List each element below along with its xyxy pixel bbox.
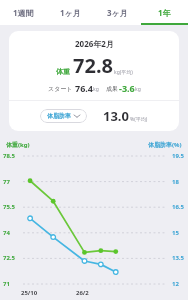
- staticText: 2026年2月: [75, 38, 114, 49]
- button[interactable]: 1年: [141, 0, 188, 25]
- staticText: 78.5: [3, 152, 15, 160]
- staticText: 1年: [158, 7, 171, 18]
- button[interactable]: 体脂肪率を選択: [40, 109, 87, 123]
- staticText: 25/10: [21, 289, 38, 297]
- button[interactable]: 1週間: [0, 0, 47, 25]
- staticText: 1ヶ月: [60, 7, 81, 18]
- staticText: 26/2: [76, 289, 89, 297]
- staticText: 16.5: [172, 203, 184, 211]
- button[interactable]: 1ヶ月: [47, 0, 94, 25]
- staticText: 15: [172, 229, 179, 237]
- staticText: 体脂肪率(%): [148, 141, 182, 149]
- staticText: スタート: [48, 85, 73, 93]
- staticText: 3ヶ月: [107, 7, 128, 18]
- staticText: 1週間: [13, 7, 34, 18]
- staticText: 成果: [106, 85, 118, 93]
- staticText: 75.5: [3, 203, 15, 211]
- staticText: 12: [172, 280, 179, 288]
- staticText: 体重: [56, 67, 70, 76]
- staticText: 13.0: [103, 107, 129, 125]
- staticText: 72.8: [73, 52, 113, 79]
- staticText: 19.5: [172, 152, 184, 160]
- staticText: -3.6: [119, 82, 135, 94]
- staticText: kg: [93, 86, 99, 93]
- staticText: %(平均): [130, 116, 148, 123]
- staticText: 13.5: [172, 254, 184, 262]
- staticText: kg(平均): [114, 69, 133, 76]
- staticText: 74: [3, 229, 10, 237]
- staticText: kg: [135, 86, 141, 93]
- staticText: 体重(kg): [6, 141, 30, 149]
- staticText: 77: [3, 178, 10, 186]
- staticText: 体脂肪率: [47, 112, 71, 120]
- staticText: 71: [3, 280, 10, 288]
- staticText: 76.4: [75, 82, 93, 94]
- staticText: 72.5: [3, 254, 15, 262]
- button[interactable]: 3ヶ月: [94, 0, 141, 25]
- staticText: 18: [172, 178, 179, 186]
